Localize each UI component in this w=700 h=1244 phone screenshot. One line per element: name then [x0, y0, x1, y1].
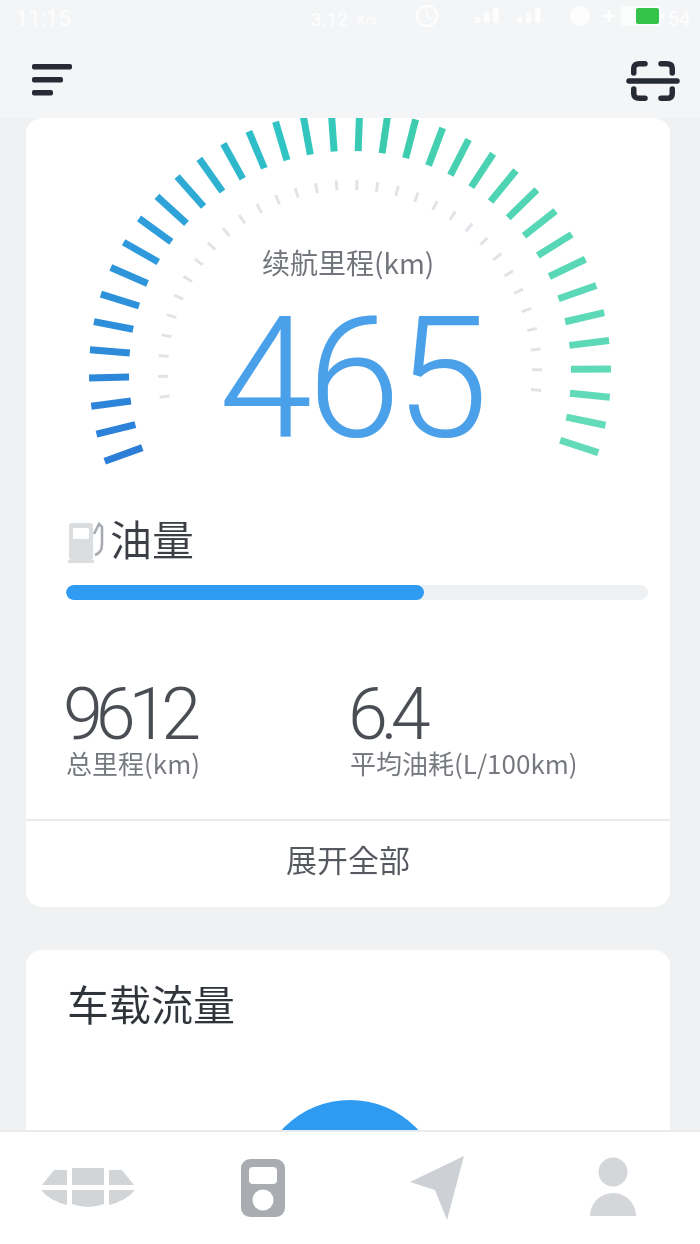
button[interactable]: 展开全部 — [26, 815, 670, 901]
staticText: 展开全部 — [286, 836, 410, 881]
staticText: K/s — [357, 12, 378, 27]
staticText: 465 — [219, 280, 484, 477]
button[interactable] — [525, 1132, 700, 1244]
staticText: 续航里程(km) — [262, 242, 435, 283]
button[interactable] — [175, 1132, 350, 1244]
staticText: 车载流量 — [67, 972, 236, 1033]
staticText: 54 — [668, 7, 691, 30]
button[interactable] — [350, 1132, 525, 1244]
staticText: 6.4 — [348, 672, 424, 756]
staticText: 油量 — [110, 507, 195, 568]
staticText: 总里程(km) — [66, 744, 201, 782]
button[interactable] — [0, 1132, 175, 1244]
staticText: 平均油耗(L/100km) — [350, 744, 578, 782]
button[interactable] — [622, 52, 684, 110]
staticText: 9612 — [63, 672, 194, 756]
staticText: 3.12 — [311, 8, 349, 30]
button[interactable] — [22, 52, 82, 110]
